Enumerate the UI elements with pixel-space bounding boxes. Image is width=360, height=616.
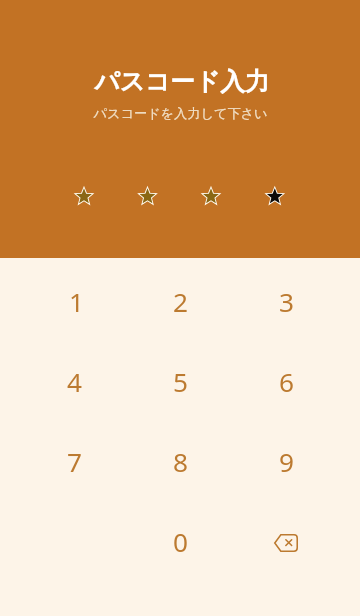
- staticText: 4: [67, 364, 82, 400]
- staticText: 6: [279, 364, 294, 400]
- staticText: 3: [279, 284, 294, 320]
- staticText: パスコードを入力して下さい: [93, 105, 268, 122]
- button[interactable]: 1: [21, 262, 127, 342]
- button[interactable]: Delete: [233, 502, 339, 582]
- staticText: パスコード入力: [94, 66, 270, 97]
- button[interactable]: Delete: [271, 529, 301, 555]
- button[interactable]: 4: [21, 342, 127, 422]
- button[interactable]: 0: [127, 502, 233, 582]
- staticText: 9: [279, 444, 294, 480]
- staticText: 5: [173, 364, 188, 400]
- staticText: 7: [67, 444, 82, 480]
- button[interactable]: 7: [21, 422, 127, 502]
- staticText: 1: [69, 284, 84, 320]
- button[interactable]: 8: [127, 422, 233, 502]
- button[interactable]: 3: [233, 262, 339, 342]
- button[interactable]: 6: [233, 342, 339, 422]
- staticText: 8: [173, 444, 188, 480]
- staticText: 0: [173, 524, 188, 560]
- staticText: 2: [173, 284, 188, 320]
- button[interactable]: 5: [127, 342, 233, 422]
- button[interactable]: 9: [233, 422, 339, 502]
- button[interactable]: 2: [127, 262, 233, 342]
